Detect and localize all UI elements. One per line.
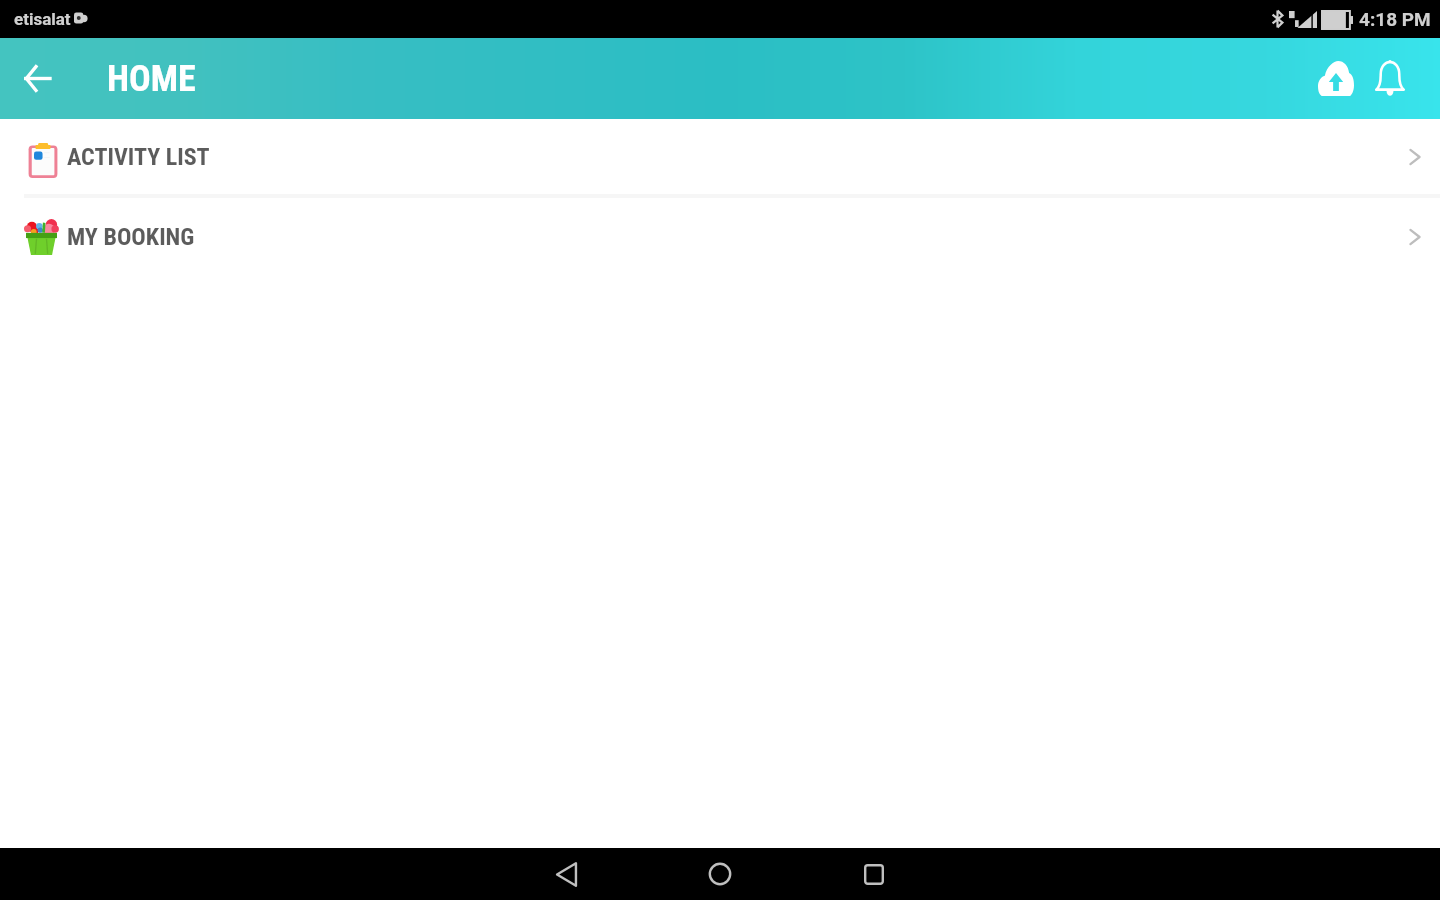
button[interactable]: Recents [797, 848, 951, 900]
button[interactable]: Home [643, 848, 797, 900]
staticText: MY BOOKING [67, 223, 195, 251]
button[interactable]: Upload [1309, 38, 1363, 119]
button[interactable]: Notifications [1363, 38, 1417, 119]
staticText: HOME [107, 58, 196, 100]
button[interactable]: Back [489, 848, 643, 900]
button[interactable]: Back [4, 38, 69, 119]
button[interactable]: MY BOOKING [0, 198, 1440, 275]
staticText: etisalat [14, 9, 71, 29]
button[interactable]: ACTIVITY LIST [0, 119, 1440, 194]
staticText: ACTIVITY LIST [67, 143, 210, 171]
staticText: 4:18 PM [1359, 8, 1431, 30]
